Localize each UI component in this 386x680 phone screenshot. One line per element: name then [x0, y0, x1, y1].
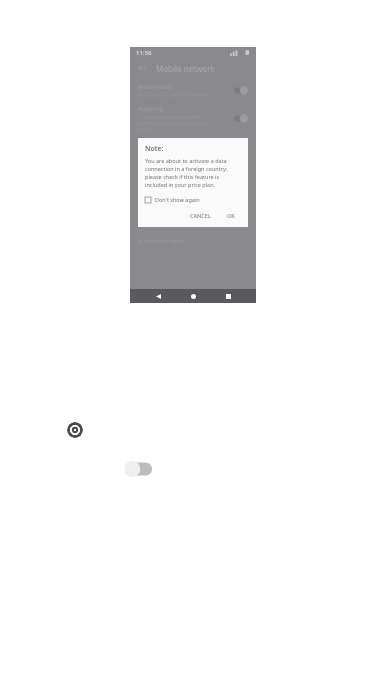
button[interactable]: Switch — [234, 114, 248, 123]
button[interactable]: Back — [136, 62, 148, 74]
staticText: Note: — [145, 144, 164, 154]
button[interactable]: Mobile data — [130, 81, 256, 100]
button[interactable]: OK — [223, 210, 239, 221]
staticText: OK — [227, 212, 235, 219]
button[interactable]: CANCEL — [186, 210, 215, 221]
staticText: Mobile data — [138, 83, 172, 91]
staticText: Mobile network — [156, 63, 215, 74]
button[interactable]: Home — [186, 289, 200, 303]
staticText: Roaming — [138, 105, 164, 113]
button[interactable]: Switch — [234, 86, 248, 95]
staticText: Access Point Names — [138, 238, 185, 245]
staticText: Don't show again — [155, 196, 200, 203]
button[interactable]: Don't show again — [145, 195, 200, 204]
staticText: CANCEL — [190, 212, 211, 219]
staticText: 11:56 — [136, 49, 152, 57]
button[interactable]: Toggle switch — [122, 459, 154, 479]
button[interactable]: Settings — [66, 421, 84, 439]
button[interactable]: Recents — [221, 289, 235, 303]
button[interactable]: Back — [151, 289, 165, 303]
staticText: You are about to activate a data connect… — [145, 157, 228, 189]
